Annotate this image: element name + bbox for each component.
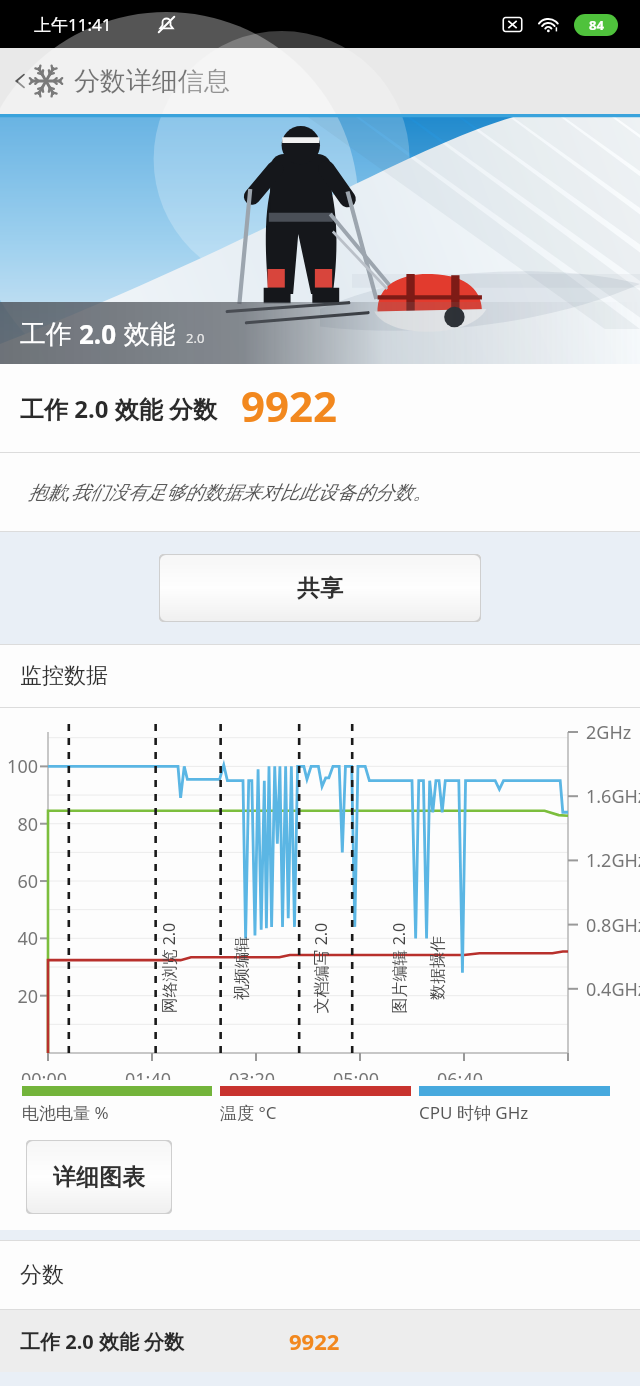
button[interactable]: 详细图表	[26, 1140, 172, 1214]
staticText: CPU 时钟 GHz	[419, 1101, 529, 1124]
staticText: 文档编写 2.0	[309, 922, 331, 1013]
staticText: 工作 2.0 效能 分数	[20, 1328, 185, 1355]
staticText: 00:00	[21, 1067, 68, 1080]
staticText: 84	[589, 16, 604, 34]
staticText: 100	[0, 754, 38, 779]
staticText: 80	[0, 812, 38, 837]
staticText: 2.0	[186, 329, 205, 347]
staticText: 05:00	[333, 1067, 380, 1080]
staticText: 工作	[20, 315, 79, 351]
staticText: 0.8GHz	[586, 913, 640, 938]
staticText: 图片编辑 2.0	[387, 922, 409, 1013]
staticText: 20	[0, 984, 38, 1009]
staticText: 效能	[117, 315, 176, 351]
staticText: 1.2GHz	[586, 848, 640, 873]
staticText: 工作 2.0 效能 分数	[20, 392, 217, 425]
staticText: 06:40	[437, 1067, 484, 1080]
staticText: 分数详细信息	[74, 65, 230, 98]
staticText: 共享	[297, 574, 343, 603]
staticText: 视频编辑	[232, 936, 252, 1000]
staticText: 1.6GHz	[586, 784, 640, 809]
staticText: 分数	[20, 1261, 64, 1289]
staticText: 0.4GHz	[586, 977, 640, 1002]
staticText: 电池电量 %	[22, 1101, 109, 1124]
staticText: 2GHz	[586, 720, 632, 745]
staticText: 网络浏览 2.0	[157, 922, 179, 1013]
staticText: 01:40	[125, 1067, 172, 1080]
button[interactable]: 共享	[159, 554, 481, 622]
staticText: 03:20	[229, 1067, 276, 1080]
staticText: 温度 °C	[220, 1101, 277, 1124]
staticText: 9922	[241, 377, 338, 434]
staticText: 抱歉,我们没有足够的数据来对比此设备的分数。	[28, 479, 432, 505]
staticText: 监控数据	[20, 662, 108, 690]
staticText: 2.0	[79, 316, 117, 351]
other: Back	[10, 71, 30, 91]
staticText: 9922	[289, 1326, 340, 1356]
staticText: 40	[0, 926, 38, 951]
staticText: 上午11:41	[34, 13, 112, 36]
button[interactable]: 工作 2.0 效能 分数	[0, 1310, 640, 1372]
staticText: 数据操作	[428, 936, 448, 1000]
staticText: 60	[0, 869, 38, 894]
button[interactable]: Back	[0, 48, 640, 114]
staticText: 详细图表	[53, 1163, 145, 1192]
